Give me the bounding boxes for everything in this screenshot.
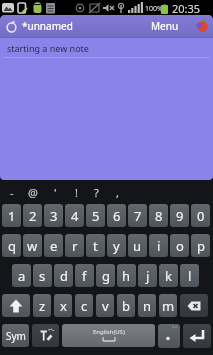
- staticText: v: [102, 297, 109, 315]
- button[interactable]: l: [180, 264, 199, 287]
- staticText: q: [8, 237, 16, 255]
- staticText: l: [188, 267, 192, 285]
- button[interactable]: p: [191, 234, 210, 257]
- button[interactable]: Menu: [151, 19, 179, 33]
- button[interactable]: [183, 324, 211, 348]
- staticText: t: [93, 237, 98, 255]
- staticText: ?: [94, 185, 99, 200]
- button[interactable]: @: [27, 183, 39, 201]
- button[interactable]: r: [65, 234, 84, 257]
- button[interactable]: [32, 324, 59, 347]
- staticText: y: [113, 237, 120, 255]
- staticText: 6: [113, 207, 121, 225]
- staticText: u: [133, 237, 142, 255]
- button[interactable]: x: [54, 294, 72, 317]
- staticText: 20:35: [172, 1, 201, 16]
- button[interactable]: English(US): [62, 324, 155, 347]
- staticText: 0: [197, 207, 205, 225]
- staticText: ,: [116, 185, 119, 200]
- button[interactable]: [2, 294, 30, 317]
- staticText: o: [176, 237, 184, 255]
- staticText: g: [102, 267, 110, 285]
- button[interactable]: 1: [2, 204, 21, 227]
- staticText: 5: [92, 207, 100, 225]
- staticText: ': [54, 185, 57, 200]
- button[interactable]: o: [170, 234, 189, 257]
- staticText: m: [162, 297, 175, 315]
- button[interactable]: 6: [107, 204, 126, 227]
- button[interactable]: 2: [23, 204, 42, 227]
- staticText: @: [28, 185, 38, 200]
- button[interactable]: [180, 294, 208, 317]
- button[interactable]: u: [128, 234, 147, 257]
- staticText: s: [39, 267, 46, 285]
- staticText: 9: [176, 207, 184, 225]
- button[interactable]: c: [75, 294, 93, 317]
- button[interactable]: n: [138, 294, 156, 317]
- staticText: a: [18, 267, 26, 285]
- button[interactable]: 5: [86, 204, 105, 227]
- button[interactable]: e: [44, 234, 63, 257]
- staticText: starting a new note: [7, 42, 89, 54]
- button[interactable]: [158, 324, 180, 348]
- button[interactable]: b: [117, 294, 135, 317]
- staticText: r: [72, 237, 78, 255]
- staticText: 4: [71, 207, 79, 225]
- staticText: c: [81, 297, 88, 315]
- staticText: e: [50, 237, 58, 255]
- button[interactable]: h: [117, 264, 136, 287]
- button[interactable]: m: [159, 294, 177, 317]
- staticText: English(US): [93, 328, 125, 336]
- button[interactable]: y: [107, 234, 126, 257]
- button[interactable]: f: [75, 264, 94, 287]
- button[interactable]: ': [49, 183, 61, 201]
- staticText: k: [165, 267, 172, 285]
- staticText: j: [146, 267, 150, 285]
- staticText: n: [143, 297, 152, 315]
- button[interactable]: s: [33, 264, 52, 287]
- button[interactable]: t: [86, 234, 105, 257]
- staticText: i: [157, 237, 161, 255]
- staticText: b: [122, 297, 130, 315]
- staticText: 3: [50, 207, 58, 225]
- staticText: 1: [8, 207, 16, 225]
- staticText: x: [60, 297, 67, 315]
- button[interactable]: 0: [191, 204, 210, 227]
- staticText: 8: [155, 207, 163, 225]
- button[interactable]: ?: [90, 183, 102, 201]
- button[interactable]: v: [96, 294, 114, 317]
- staticText: Menu: [151, 19, 179, 33]
- button[interactable]: k: [159, 264, 178, 287]
- button[interactable]: w: [23, 234, 42, 257]
- button[interactable]: g: [96, 264, 115, 287]
- button[interactable]: 4: [65, 204, 84, 227]
- button[interactable]: 3: [44, 204, 63, 227]
- staticText: f: [82, 267, 87, 285]
- staticText: 7: [134, 207, 142, 225]
- button[interactable]: -: [6, 183, 18, 201]
- button[interactable]: !: [70, 183, 82, 201]
- button[interactable]: 7: [128, 204, 147, 227]
- staticText: d: [60, 267, 68, 285]
- staticText: -: [10, 185, 14, 200]
- button[interactable]: Sym: [2, 324, 29, 347]
- button[interactable]: [195, 19, 209, 33]
- staticText: *unnamed: [22, 19, 73, 33]
- button[interactable]: 8: [149, 204, 168, 227]
- button[interactable]: d: [54, 264, 73, 287]
- staticText: 100%: [145, 4, 163, 14]
- button[interactable]: 9: [170, 204, 189, 227]
- button[interactable]: a: [12, 264, 31, 287]
- button[interactable]: q: [2, 234, 21, 257]
- staticText: !: [75, 185, 78, 200]
- staticText: 2: [29, 207, 37, 225]
- staticText: Sym: [6, 329, 26, 343]
- staticText: h: [122, 267, 131, 285]
- button[interactable]: ,: [111, 183, 123, 201]
- button[interactable]: i: [149, 234, 168, 257]
- button[interactable]: j: [138, 264, 157, 287]
- staticText: z: [39, 297, 46, 315]
- button[interactable]: z: [33, 294, 51, 317]
- staticText: w: [27, 237, 38, 255]
- staticText: p: [197, 237, 205, 255]
